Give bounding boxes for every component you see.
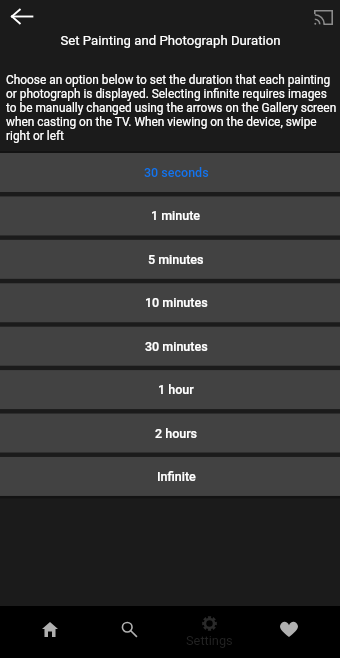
button[interactable]: Home xyxy=(10,606,89,658)
button[interactable]: Cast xyxy=(308,0,338,32)
staticText: Choose an option below to set the durati… xyxy=(6,73,337,143)
staticText: Settings xyxy=(186,633,233,648)
button[interactable]: Navigate up xyxy=(5,0,39,32)
button[interactable]: Settings xyxy=(169,606,249,658)
staticText: 10 minutes xyxy=(145,295,208,310)
staticText: 1 hour xyxy=(158,382,194,397)
staticText: 1 minute xyxy=(151,208,201,223)
button[interactable]: 1 minute xyxy=(0,196,340,235)
button[interactable]: 5 minutes xyxy=(0,240,340,279)
staticText: 30 minutes xyxy=(145,339,208,354)
staticText: 5 minutes xyxy=(148,252,204,267)
button[interactable]: 10 minutes xyxy=(0,283,340,322)
staticText: 2 hours xyxy=(155,426,198,441)
button[interactable]: 2 hours xyxy=(0,414,340,453)
button[interactable]: 30 seconds xyxy=(0,153,340,192)
staticText: Infinite xyxy=(157,469,196,484)
button[interactable]: 1 hour xyxy=(0,370,340,409)
staticText: 30 seconds xyxy=(144,165,209,180)
button[interactable]: Search xyxy=(89,606,169,658)
button[interactable]: Infinite xyxy=(0,457,340,496)
button[interactable]: 30 minutes xyxy=(0,327,340,366)
button[interactable]: Favourites xyxy=(249,606,329,658)
staticText: Set Painting and Photograph Duration xyxy=(60,33,281,48)
